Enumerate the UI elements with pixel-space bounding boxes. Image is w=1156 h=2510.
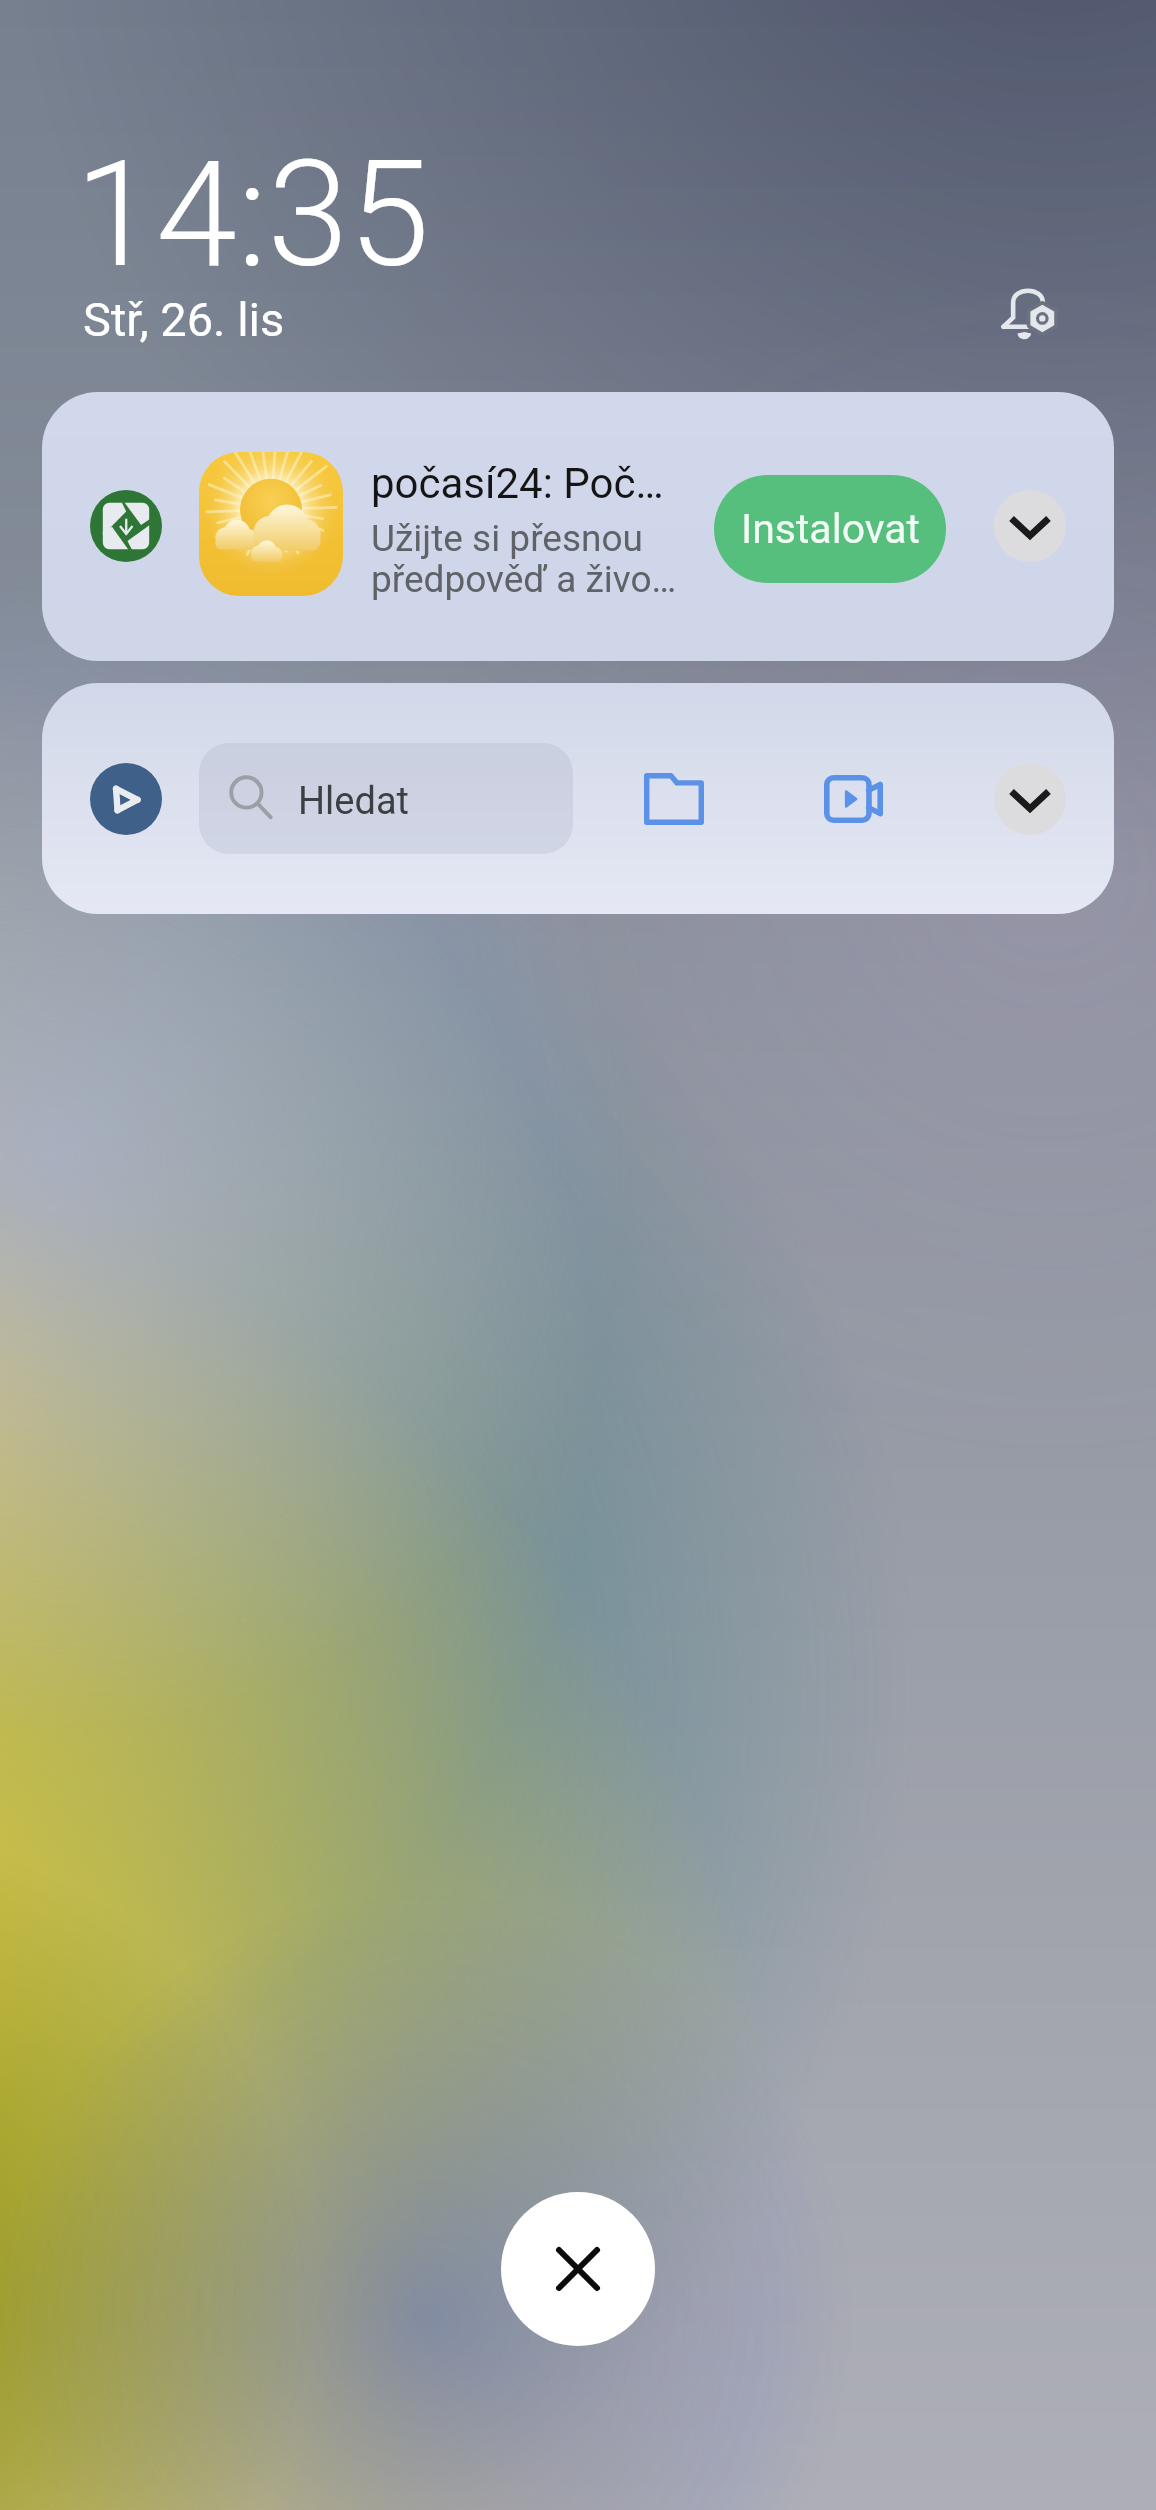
button[interactable]: Instalovat (714, 475, 946, 583)
button[interactable]: Hledat (199, 743, 573, 854)
staticText: počasí24: Poč… (371, 459, 664, 508)
staticText: 14:35 (75, 130, 430, 301)
button[interactable]: Video (800, 746, 906, 852)
button[interactable]: Hledat (42, 683, 1114, 914)
staticText: Instalovat (741, 505, 920, 553)
button[interactable]: Expand (994, 763, 1066, 835)
staticText: Užijte si přesnou předpověď a živo… (371, 517, 677, 601)
button[interactable]: Expand (994, 490, 1066, 562)
button[interactable]: Notification settings (980, 265, 1076, 361)
staticText: Hledat (298, 779, 410, 824)
staticText: Stř, 26. lis (83, 292, 285, 347)
button[interactable]: Files (621, 746, 727, 852)
button[interactable]: počasí24: Poč… (42, 392, 1114, 661)
button[interactable]: Close (501, 2192, 655, 2346)
